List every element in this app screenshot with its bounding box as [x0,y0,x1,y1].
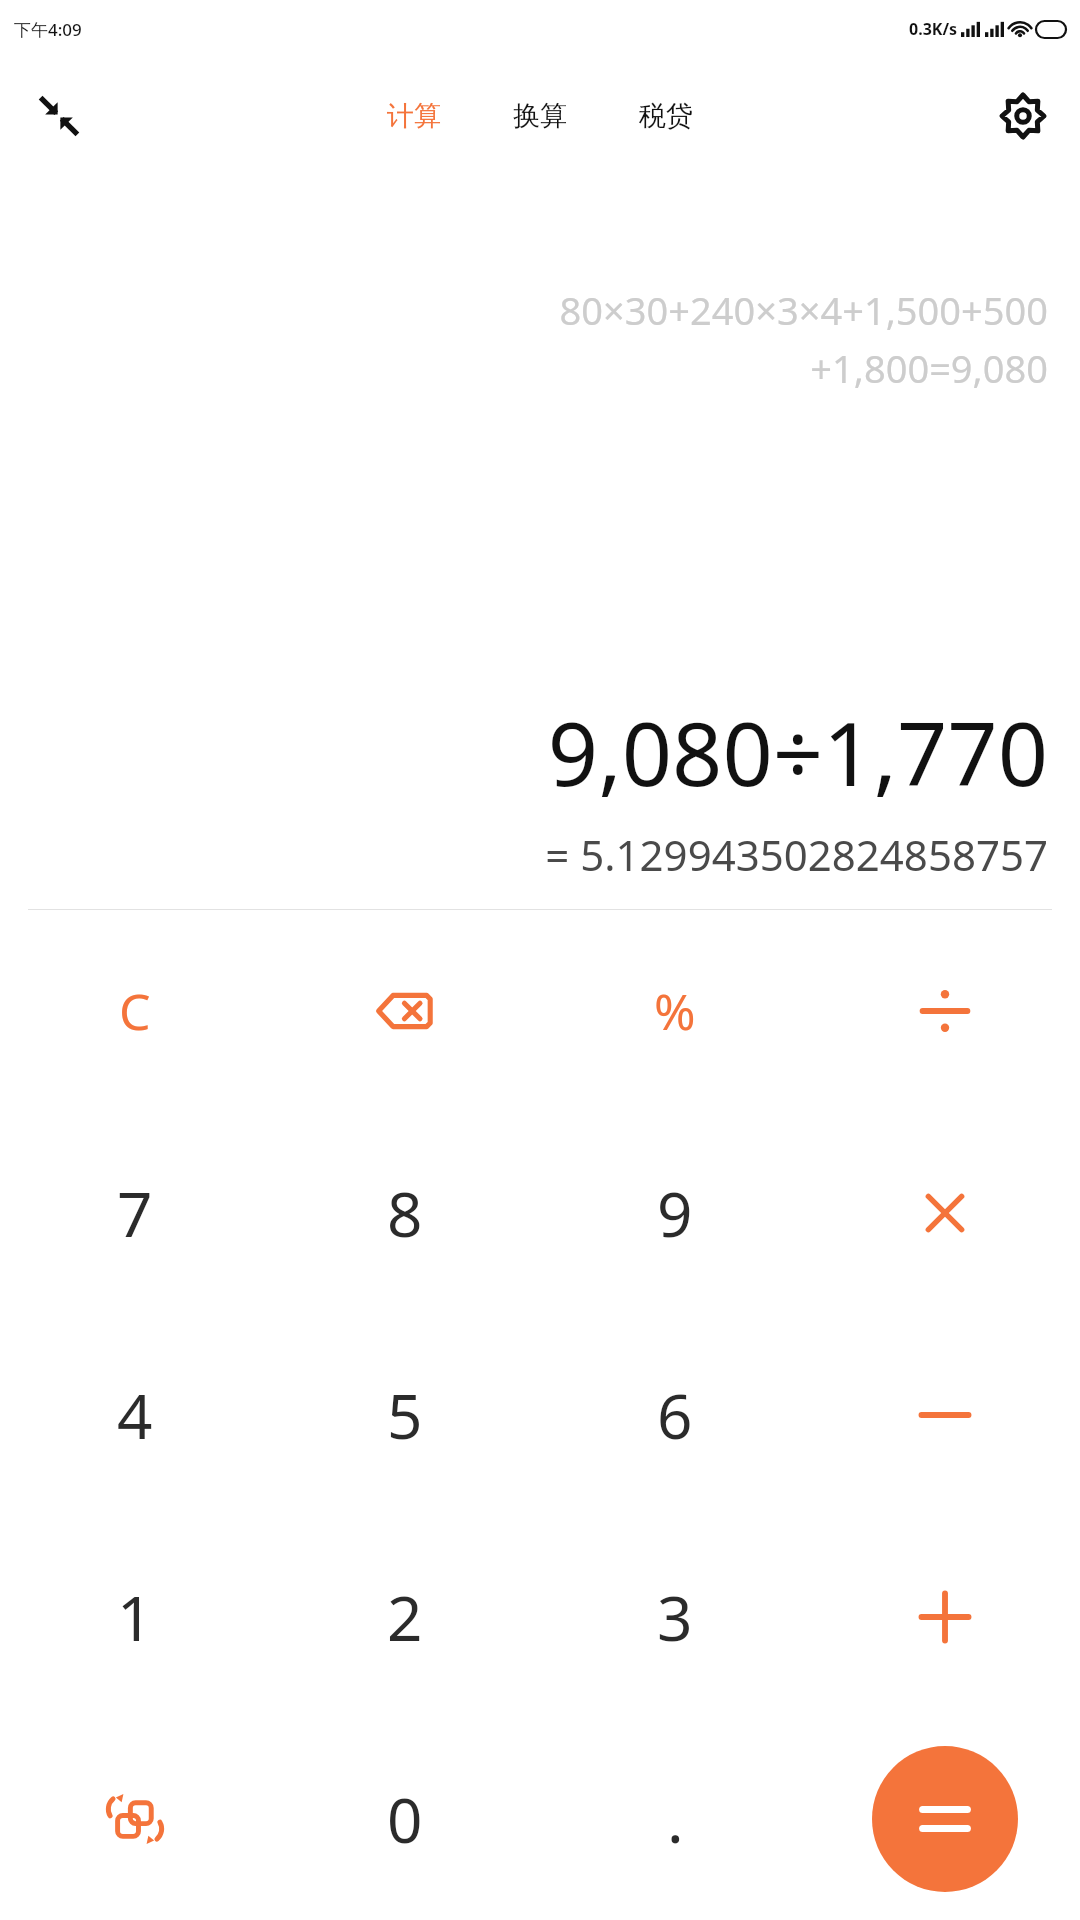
button[interactable]: 8 [270,1112,540,1314]
button[interactable]: . [540,1718,810,1920]
staticText: 9,080÷1,770 [547,692,1048,812]
staticText: 0.3K/s [909,18,958,40]
staticText: 8 [387,1171,423,1255]
button[interactable]: Swap [0,1718,270,1920]
button[interactable]: 3 [540,1516,810,1718]
staticText: 1 [117,1575,153,1659]
button[interactable]: Equals [810,1718,1080,1920]
button[interactable]: 6 [540,1314,810,1516]
button[interactable]: 税贷 [629,91,703,141]
staticText: 4 [117,1373,153,1457]
button[interactable]: 计算 [377,91,451,141]
staticText: 80×30+240×3×4+1,500+500 +1,800=9,080 [559,284,1048,394]
button[interactable]: Multiply [810,1112,1080,1314]
button[interactable]: 4 [0,1314,270,1516]
staticText: 下午4:09 [14,18,82,41]
button[interactable]: 9 [540,1112,810,1314]
staticText: C [119,977,151,1045]
staticText: 3 [657,1575,693,1659]
button[interactable]: 2 [270,1516,540,1718]
staticText: = 5.129943502824858757 [545,826,1048,883]
staticText: 6 [657,1373,693,1457]
staticText: 9 [657,1171,693,1255]
staticText: % [654,977,696,1045]
staticText: 0 [387,1777,423,1861]
staticText: 5 [387,1373,423,1457]
button[interactable]: Collapse [24,81,94,151]
staticText: 税贷 [639,99,693,133]
button[interactable]: Minus [810,1314,1080,1516]
button[interactable]: 换算 [503,91,577,141]
staticText: 7 [117,1171,153,1255]
staticText: 计算 [387,99,441,133]
button[interactable]: Settings [988,81,1058,151]
staticText: 换算 [513,99,567,133]
staticText: . [667,1777,684,1861]
button[interactable]: Backspace [270,910,540,1112]
button[interactable]: 0 [270,1718,540,1920]
button[interactable]: 7 [0,1112,270,1314]
button[interactable] [872,1746,1018,1892]
button[interactable]: % [540,910,810,1112]
button[interactable]: Divide [810,910,1080,1112]
button[interactable]: 1 [0,1516,270,1718]
button[interactable]: 5 [270,1314,540,1516]
button[interactable]: Plus [810,1516,1080,1718]
staticText: 2 [387,1575,423,1659]
button[interactable]: C [0,910,270,1112]
